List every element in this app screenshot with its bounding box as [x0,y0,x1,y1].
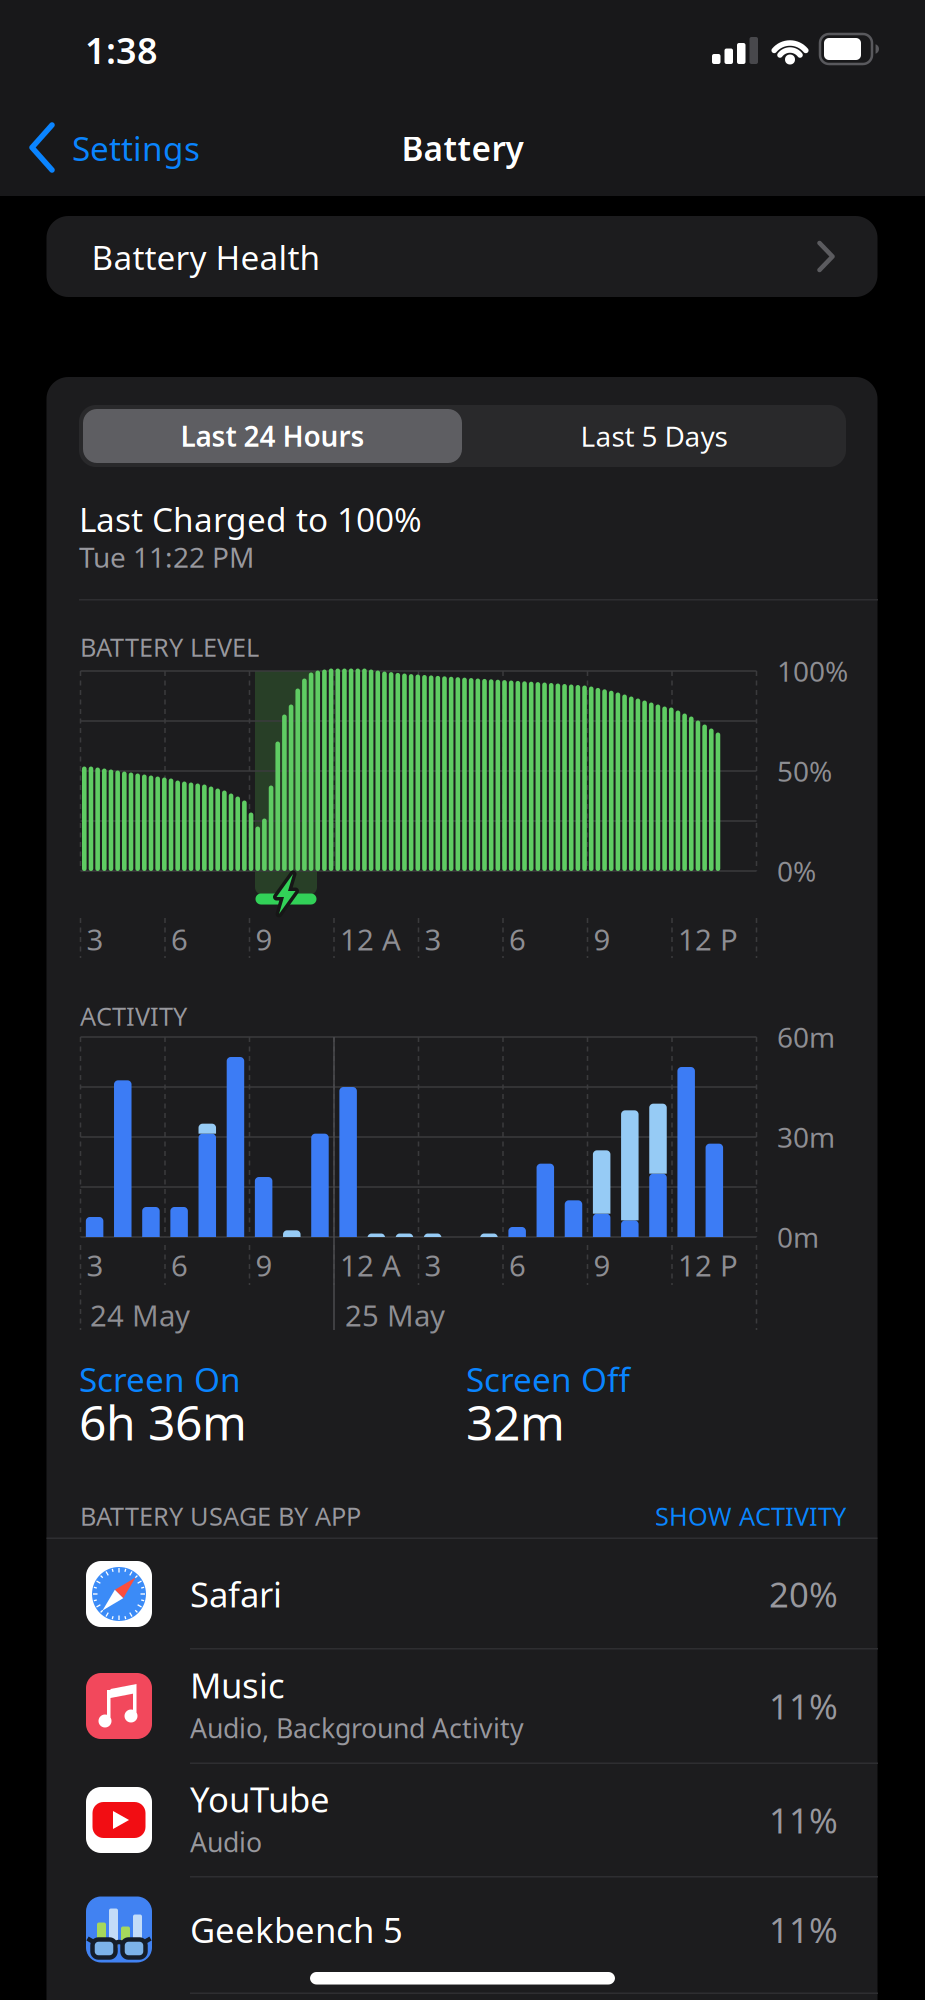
staticText: 0m [777,1218,819,1256]
staticText: 9 [593,1245,610,1284]
staticText: 1:38 [85,26,158,74]
staticText: Audio, Background Activity [190,1710,524,1746]
staticText: 3 [424,1245,441,1284]
staticText: 12 A [340,919,401,958]
staticText: 11% [769,1683,838,1729]
staticText: 6 [171,1245,188,1284]
button[interactable]: Safari [46,1539,878,1649]
staticText: Screen Off [466,1357,630,1401]
staticText: 11% [769,1906,838,1952]
staticText: Last 24 Hours [180,417,364,455]
staticText: 9 [255,919,272,958]
button[interactable]: Geekbench 5 [46,1877,878,1981]
staticText: 12 P [678,919,738,958]
staticText: 11% [769,1797,838,1843]
staticText: Music [190,1662,285,1708]
staticText: ACTIVITY [80,999,187,1033]
staticText: 6 [509,1245,526,1284]
staticText: 9 [255,1245,272,1284]
staticText: 9 [593,919,610,958]
staticText: 24 May [90,1295,190,1334]
staticText: 32m [466,1390,565,1454]
staticText: 3 [86,919,103,958]
staticText: 12 P [678,1245,738,1284]
staticText: Geekbench 5 [190,1906,403,1952]
button[interactable]: SHOW ACTIVITY [526,1501,846,1531]
staticText: Last 5 Days [580,417,727,455]
staticText: 6 [171,919,188,958]
staticText: BATTERY LEVEL [80,630,259,664]
button[interactable]: Music [46,1649,878,1762]
staticText: 25 May [345,1295,445,1334]
button[interactable]: Settings [0,0,330,196]
staticText: 100% [777,652,848,690]
staticText: Battery Health [91,235,320,279]
staticText: Settings [72,126,200,170]
staticText: Safari [190,1571,282,1617]
staticText: 50% [777,752,832,790]
staticText: Last Charged to 100% [79,497,422,541]
staticText: Screen On [79,1357,241,1401]
staticText: 0% [777,852,816,890]
staticText: 6 [509,919,526,958]
staticText: 30m [777,1118,835,1156]
staticText: 60m [777,1018,835,1056]
staticText: Audio [190,1824,262,1860]
staticText: SHOW ACTIVITY [655,1499,846,1533]
button[interactable]: YouTube [46,1764,878,1876]
staticText: BATTERY USAGE BY APP [80,1499,361,1533]
staticText: 6h 36m [79,1390,247,1454]
staticText: 12 A [340,1245,401,1284]
staticText: Tue 11:22 PM [79,538,254,576]
staticText: Battery [401,126,523,170]
button[interactable]: Last 24 Hours [83,409,462,463]
button[interactable]: Last 5 Days [464,409,844,463]
staticText: 3 [86,1245,103,1284]
button[interactable]: Battery Health [46,216,877,297]
staticText: 3 [424,919,441,958]
staticText: YouTube [190,1776,330,1822]
staticText: 20% [769,1571,838,1617]
